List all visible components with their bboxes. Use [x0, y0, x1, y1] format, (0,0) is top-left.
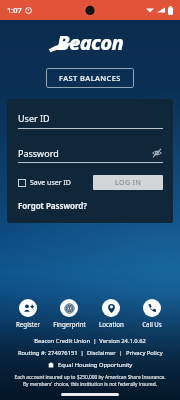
button[interactable]: Forgot Password? — [18, 200, 87, 211]
button[interactable]: Location — [92, 297, 130, 330]
staticText: Call Us — [142, 320, 162, 328]
staticText: Equal Housing Opportunity — [58, 361, 133, 369]
staticText: Location — [99, 320, 124, 328]
staticText: Register — [16, 320, 40, 328]
staticText: Password — [18, 147, 59, 159]
button[interactable]: LOG IN — [93, 175, 163, 190]
button[interactable]: Show password — [150, 146, 163, 159]
staticText: LOG IN — [115, 178, 142, 188]
staticText: Privacy Policy — [126, 349, 163, 357]
staticText: Disclaimer — [87, 349, 116, 357]
staticText: Routing #: 274976151 | — [18, 349, 87, 357]
button[interactable]: Call Us — [133, 297, 171, 330]
button[interactable]: Disclaimer — [87, 349, 116, 357]
button[interactable]: Save user ID — [18, 178, 71, 188]
button[interactable]: Register — [9, 297, 47, 330]
staticText: 1:07 — [7, 5, 22, 15]
staticText: Forgot Password? — [18, 200, 87, 211]
button[interactable]: Fingerprint — [50, 297, 88, 330]
staticText: | — [116, 349, 126, 357]
staticText: Save user ID — [30, 178, 71, 188]
button[interactable]: FAST BALANCES — [46, 68, 134, 88]
staticText: FAST BALANCES — [59, 73, 121, 83]
staticText: Fingerprint — [53, 320, 86, 328]
staticText: Each account insured up to $250,000 by A… — [14, 374, 166, 388]
staticText: Beacon — [57, 29, 124, 56]
staticText: User ID — [18, 112, 50, 124]
staticText: Beacon Credit Union | Version 24.1.0.62 — [34, 337, 146, 345]
button[interactable]: Privacy Policy — [126, 349, 163, 357]
